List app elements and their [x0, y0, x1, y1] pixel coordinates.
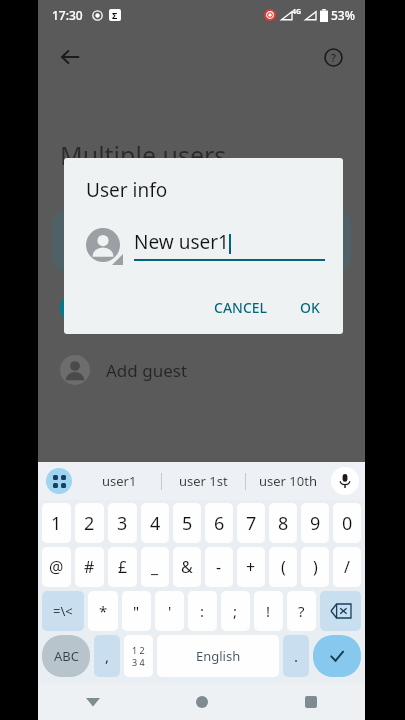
button[interactable]: Help	[313, 37, 353, 77]
button[interactable]: ABC	[42, 635, 90, 677]
button[interactable]: !	[254, 591, 283, 631]
button[interactable]: user 1st	[162, 462, 245, 500]
button[interactable]: )	[301, 547, 329, 587]
staticText: 1 2	[132, 644, 145, 656]
staticText: 2	[84, 511, 95, 536]
staticText: (	[281, 556, 286, 578]
staticText: User info	[86, 177, 168, 203]
staticText: *	[99, 601, 108, 621]
button[interactable]: user 10th	[246, 462, 329, 500]
button[interactable]: Apps	[46, 468, 72, 494]
button[interactable]: English	[157, 635, 279, 677]
button[interactable]: 8	[269, 503, 297, 543]
button[interactable]: Add guest	[38, 348, 365, 392]
staticText: #	[84, 556, 95, 578]
staticText: 7	[246, 511, 257, 536]
staticText: ;	[233, 601, 238, 621]
button[interactable]: '	[155, 591, 184, 631]
button[interactable]: £	[108, 547, 137, 587]
button[interactable]: *	[88, 591, 118, 631]
staticText: 6	[214, 511, 225, 536]
button[interactable]: :	[188, 591, 217, 631]
staticText: @	[49, 556, 64, 578]
staticText: '	[168, 601, 172, 621]
button[interactable]: Back	[38, 683, 147, 720]
button[interactable]: _	[141, 547, 169, 587]
staticText: =\<	[53, 602, 73, 620]
button[interactable]: 4	[141, 503, 169, 543]
staticText: 53%	[331, 7, 355, 23]
staticText: )	[313, 556, 318, 578]
button[interactable]: Change photo	[86, 228, 120, 262]
staticText: !	[266, 601, 271, 621]
button[interactable]: "	[122, 591, 151, 631]
staticText: Σ	[112, 9, 118, 21]
staticText: New user1	[134, 229, 229, 255]
staticText: OK	[300, 298, 320, 317]
staticText: :	[200, 601, 205, 621]
button[interactable]: 7	[237, 503, 265, 543]
button[interactable]: Numbers	[124, 635, 153, 677]
button[interactable]: /	[333, 547, 361, 587]
staticText: 3	[117, 511, 128, 536]
button[interactable]: Voice input	[331, 467, 359, 495]
staticText: Add guest	[106, 359, 188, 382]
button[interactable]: #	[75, 547, 104, 587]
staticText: English	[196, 647, 241, 665]
button[interactable]: ;	[221, 591, 250, 631]
button[interactable]: Back	[50, 37, 90, 77]
staticText: .	[294, 646, 299, 666]
button[interactable]: CANCEL	[205, 291, 277, 324]
staticText: ?	[331, 50, 336, 65]
button[interactable]: (	[269, 547, 297, 587]
button[interactable]: +	[237, 547, 265, 587]
staticText: -	[216, 556, 222, 578]
button[interactable]: 6	[205, 503, 233, 543]
staticText: 0	[342, 511, 353, 536]
button[interactable]: =\<	[42, 591, 84, 631]
staticText: &	[181, 556, 193, 578]
staticText: +	[246, 556, 256, 578]
staticText: "	[133, 601, 140, 621]
staticText: 8	[278, 511, 289, 536]
button[interactable]: 3	[108, 503, 137, 543]
button[interactable]: user1	[78, 462, 161, 500]
button[interactable]: OK	[291, 291, 329, 324]
staticText: 4G	[292, 7, 302, 17]
staticText: 9	[310, 511, 321, 536]
staticText: 4	[150, 511, 161, 536]
button[interactable]: @	[42, 547, 71, 587]
staticText: ?	[298, 601, 305, 621]
staticText: /	[344, 556, 350, 578]
button[interactable]: Done	[313, 635, 361, 677]
button[interactable]: 5	[173, 503, 201, 543]
staticText: _	[151, 556, 159, 578]
staticText: 5	[182, 511, 193, 536]
button[interactable]: 0	[333, 503, 361, 543]
staticText: ,	[105, 646, 110, 666]
staticText: CANCEL	[214, 298, 268, 317]
button[interactable]: .	[283, 635, 309, 677]
staticText: £	[118, 556, 128, 578]
button[interactable]: ?	[287, 591, 316, 631]
staticText: 3 4	[132, 656, 145, 668]
staticText: user 1st	[179, 472, 228, 490]
button[interactable]: You (Serhii)	[38, 286, 365, 330]
staticText: user1	[102, 472, 137, 490]
button[interactable]: Backspace	[320, 591, 361, 631]
button[interactable]: ,	[94, 635, 120, 677]
button[interactable]: 2	[75, 503, 104, 543]
button[interactable]: &	[173, 547, 201, 587]
staticText: ABC	[54, 647, 79, 665]
staticText: user 10th	[259, 472, 317, 490]
button[interactable]: 9	[301, 503, 329, 543]
button[interactable]: 1	[42, 503, 71, 543]
staticText: Multiple users	[60, 138, 227, 172]
button[interactable]: Recent apps	[256, 683, 365, 720]
staticText: 17:30	[52, 7, 83, 23]
staticText: 1	[51, 511, 62, 536]
button[interactable]: Home	[147, 683, 256, 720]
button[interactable]: -	[205, 547, 233, 587]
